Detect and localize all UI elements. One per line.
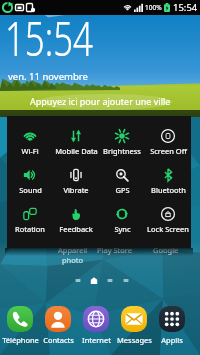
staticText: Brightness	[103, 146, 141, 156]
button[interactable]: Internet	[77, 306, 115, 345]
staticText: 15:54	[5, 6, 93, 70]
button[interactable]: Applis	[153, 306, 191, 345]
staticText: Appareil	[58, 245, 88, 255]
staticText: Sound	[19, 185, 42, 195]
button[interactable]: Page 1	[70, 274, 86, 284]
button[interactable]: Page 3	[102, 274, 118, 284]
staticText: 15:54	[173, 1, 198, 14]
button[interactable]: GPS	[99, 168, 145, 195]
button[interactable]: Rotation	[7, 207, 53, 234]
button[interactable]: Sound	[7, 168, 53, 195]
button[interactable]: Bluetooth	[145, 168, 191, 195]
staticText: Wi-Fi	[21, 146, 39, 156]
button[interactable]: Page 4	[118, 274, 134, 284]
staticText: Lock Screen	[147, 224, 189, 234]
staticText: 100%	[145, 3, 162, 12]
button[interactable]: Contacts	[39, 306, 77, 345]
button[interactable]: Vibrate	[53, 168, 99, 195]
staticText: Rotation	[15, 224, 45, 234]
staticText: Google	[153, 245, 179, 255]
button[interactable]: Mobile Data	[53, 129, 99, 156]
staticText: Screen Off	[150, 146, 187, 156]
staticText: Bluetooth	[151, 185, 186, 195]
staticText: GPS	[115, 185, 130, 195]
button[interactable]: Screen Off	[145, 129, 191, 156]
button[interactable]: 15:54	[0, 0, 200, 117]
staticText: Feedback	[59, 224, 93, 234]
staticText: Mobile Data	[55, 146, 98, 156]
staticText: Contacts	[43, 335, 74, 345]
button[interactable]: Téléphone	[1, 306, 39, 345]
button[interactable]: Sync	[99, 207, 145, 234]
button[interactable]: Wi-Fi	[7, 129, 53, 156]
button[interactable]: Lock Screen	[145, 207, 191, 234]
staticText: Vibrate	[63, 185, 89, 195]
staticText: Play Store	[97, 245, 132, 255]
button[interactable]: Feedback	[53, 207, 99, 234]
staticText: Téléphone	[2, 335, 39, 345]
staticText: Appuyez ici pour ajouter une ville	[30, 95, 171, 107]
button[interactable]: Page 2	[86, 274, 102, 284]
staticText: Sync	[114, 224, 131, 234]
staticText: Messages	[117, 335, 152, 345]
staticText: photo	[62, 255, 84, 265]
button[interactable]: Messages	[115, 306, 153, 345]
staticText: Applis	[161, 335, 183, 345]
staticText: Internet	[82, 335, 111, 345]
button[interactable]: Brightness	[99, 129, 145, 156]
staticText: ven. 11 novembre	[8, 70, 88, 83]
